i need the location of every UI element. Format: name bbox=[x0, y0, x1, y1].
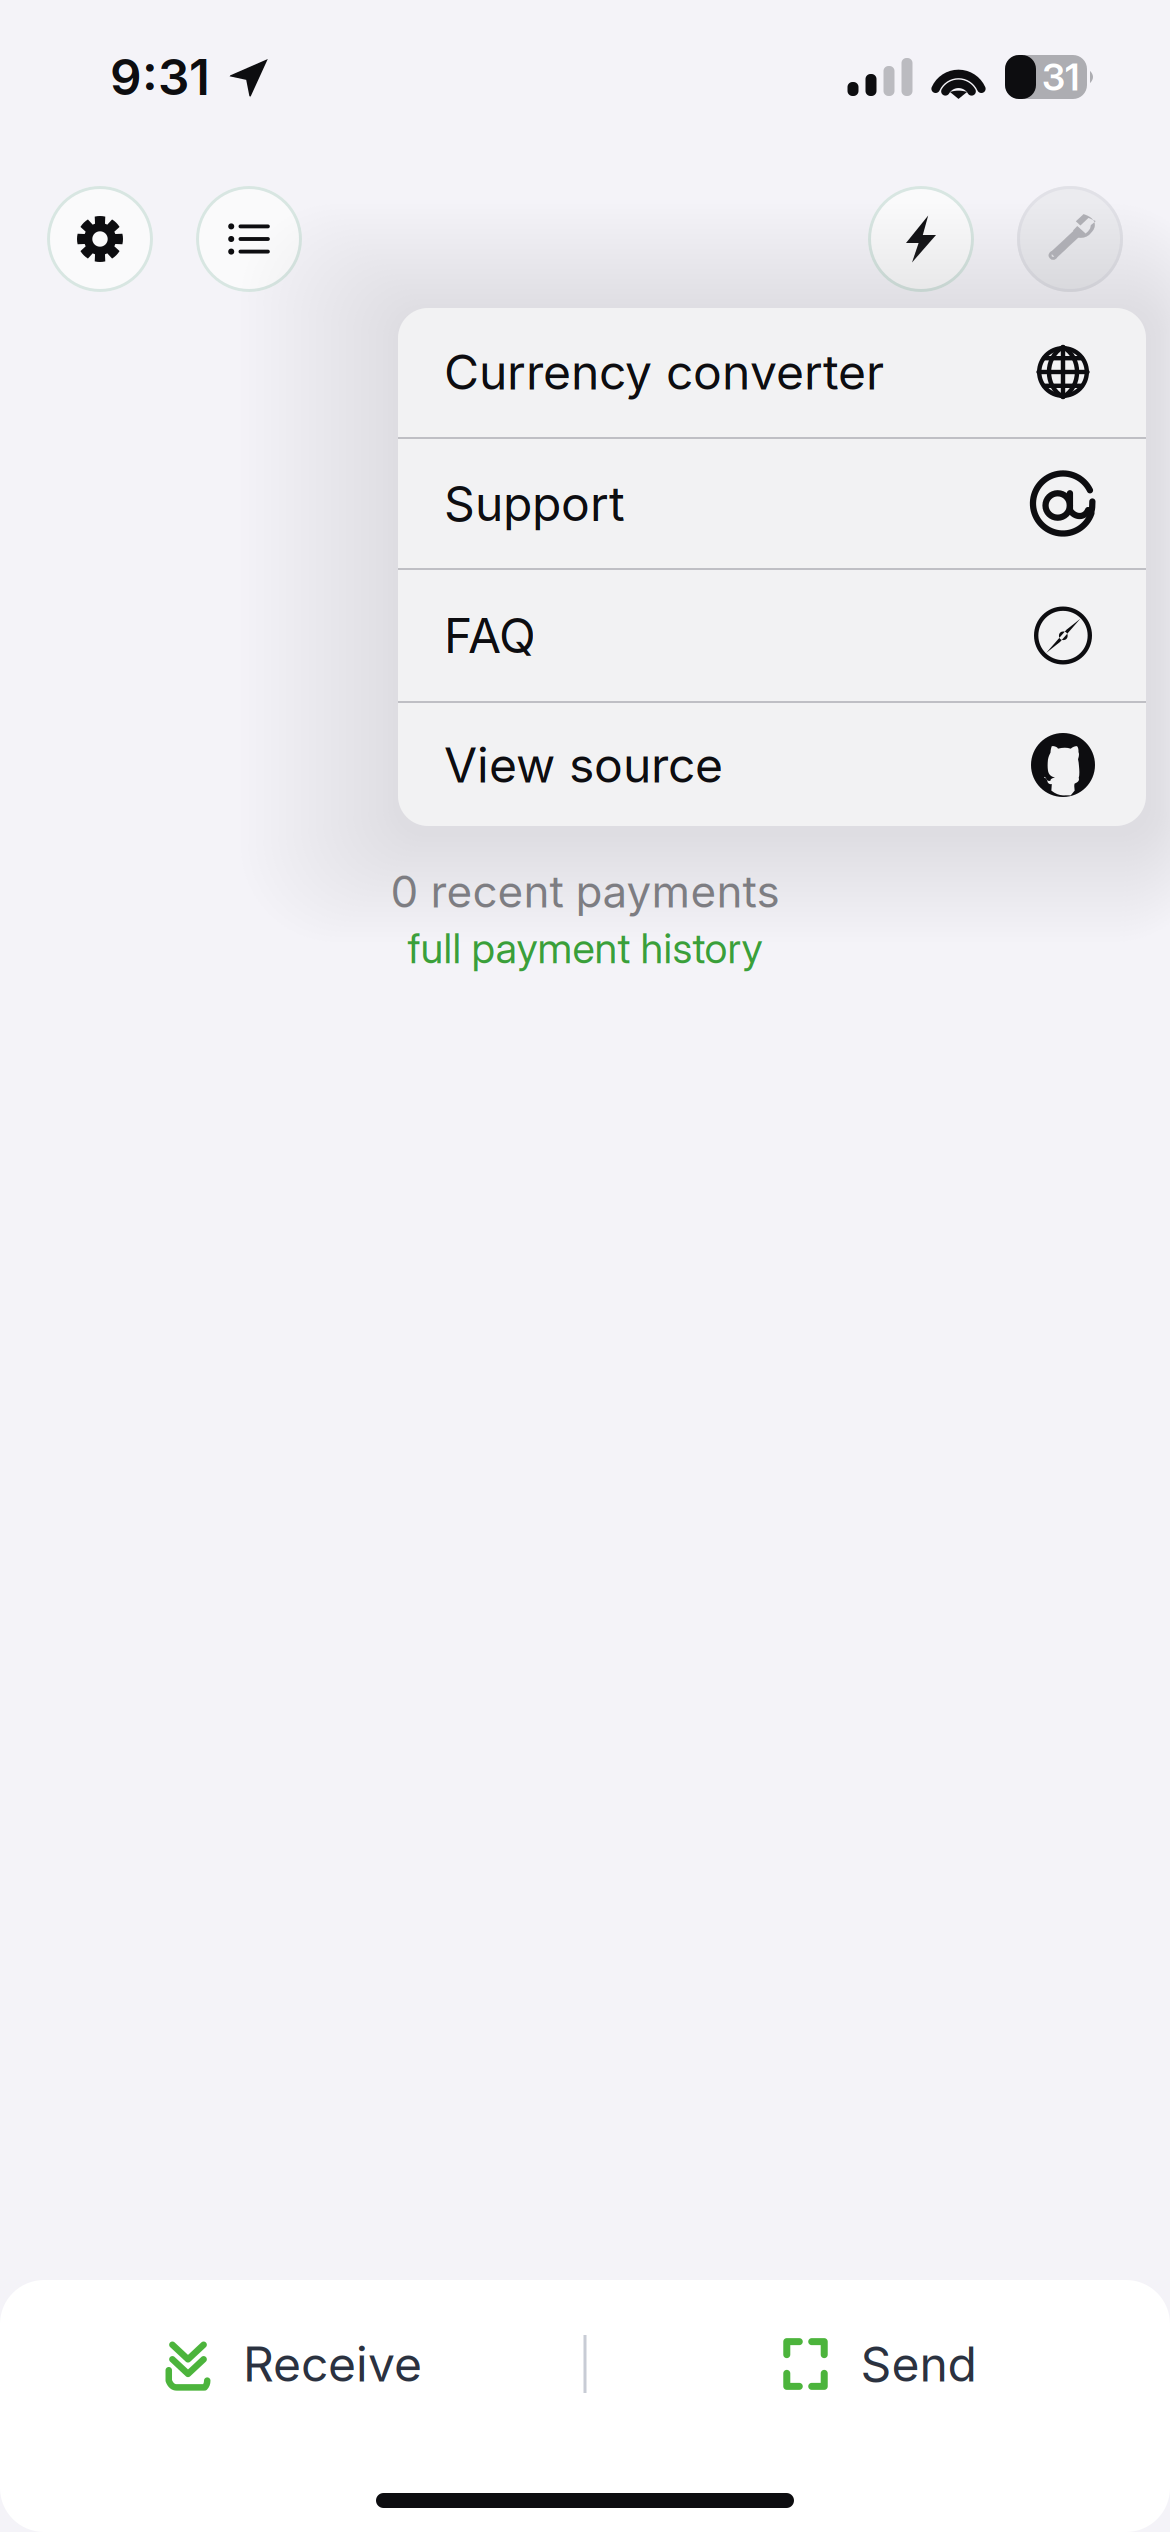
button[interactable]: Lightning bbox=[868, 186, 974, 292]
button[interactable]: full payment history bbox=[407, 923, 762, 973]
button[interactable]: Currency converter bbox=[398, 307, 1146, 437]
button[interactable]: FAQ bbox=[398, 570, 1146, 701]
staticText: 9:31 bbox=[110, 47, 210, 107]
staticText: full payment history bbox=[407, 923, 762, 973]
staticText: Receive bbox=[243, 2335, 422, 2393]
staticText: Support bbox=[444, 474, 625, 533]
button[interactable]: Payment history bbox=[196, 186, 302, 292]
button[interactable]: View source bbox=[398, 703, 1146, 827]
button[interactable]: Settings bbox=[47, 186, 153, 292]
staticText: 31 bbox=[1042, 54, 1080, 100]
staticText: FAQ bbox=[444, 606, 536, 665]
button[interactable]: Send bbox=[586, 2280, 1169, 2448]
button[interactable]: Tools bbox=[1017, 186, 1123, 292]
staticText: Currency converter bbox=[444, 343, 884, 401]
staticText: 0 recent payments bbox=[390, 865, 779, 918]
staticText: Send bbox=[860, 2335, 976, 2393]
button[interactable]: Support bbox=[398, 439, 1146, 568]
button[interactable]: Receive bbox=[0, 2280, 583, 2448]
staticText: View source bbox=[444, 736, 723, 794]
